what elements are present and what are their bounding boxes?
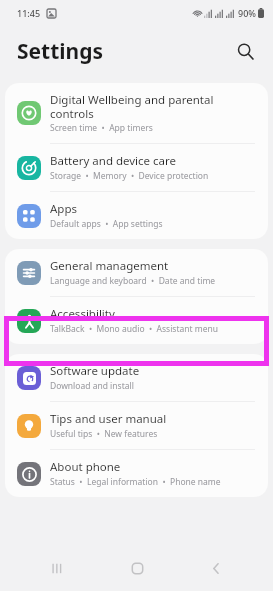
button[interactable]: Apps <box>5 192 268 239</box>
button[interactable]: About phone <box>5 450 268 497</box>
staticText: Status • Legal information • Phone name <box>50 476 221 488</box>
staticText: Storage • Memory • Device protection <box>50 170 209 182</box>
staticText: Tips and user manual <box>50 411 167 427</box>
staticText: Download and install <box>50 380 134 392</box>
staticText: 11:45 <box>17 7 41 19</box>
staticText: About phone <box>50 459 121 475</box>
staticText: Default apps • App settings <box>50 218 163 230</box>
staticText: Digital Wellbeing and parental controls <box>50 92 214 121</box>
staticText: Apps <box>50 201 78 217</box>
staticText: TalkBack • Mono audio • Assistant menu <box>50 323 219 335</box>
staticText: 90% <box>238 7 256 19</box>
button[interactable]: Search <box>228 34 262 68</box>
button[interactable]: General management <box>5 249 268 296</box>
button[interactable]: Back <box>193 545 239 591</box>
staticText: Screen time • App timers <box>50 122 153 134</box>
staticText: Useful tips • New features <box>50 428 158 440</box>
button[interactable]: Battery and device care <box>5 144 268 191</box>
button[interactable]: Digital Wellbeing and parental controls <box>5 83 268 143</box>
button[interactable]: Accessibility <box>5 297 268 344</box>
staticText: Settings <box>17 37 104 66</box>
staticText: Battery and device care <box>50 153 177 169</box>
staticText: Language and keyboard • Date and time <box>50 275 216 287</box>
staticText: Accessibility <box>50 306 115 322</box>
staticText: Software update <box>50 363 140 379</box>
button[interactable]: Tips and user manual <box>5 402 268 449</box>
staticText: General management <box>50 258 169 274</box>
button[interactable]: Software update <box>5 354 268 401</box>
button[interactable]: Home <box>114 545 160 591</box>
button[interactable]: Recent apps <box>34 545 80 591</box>
